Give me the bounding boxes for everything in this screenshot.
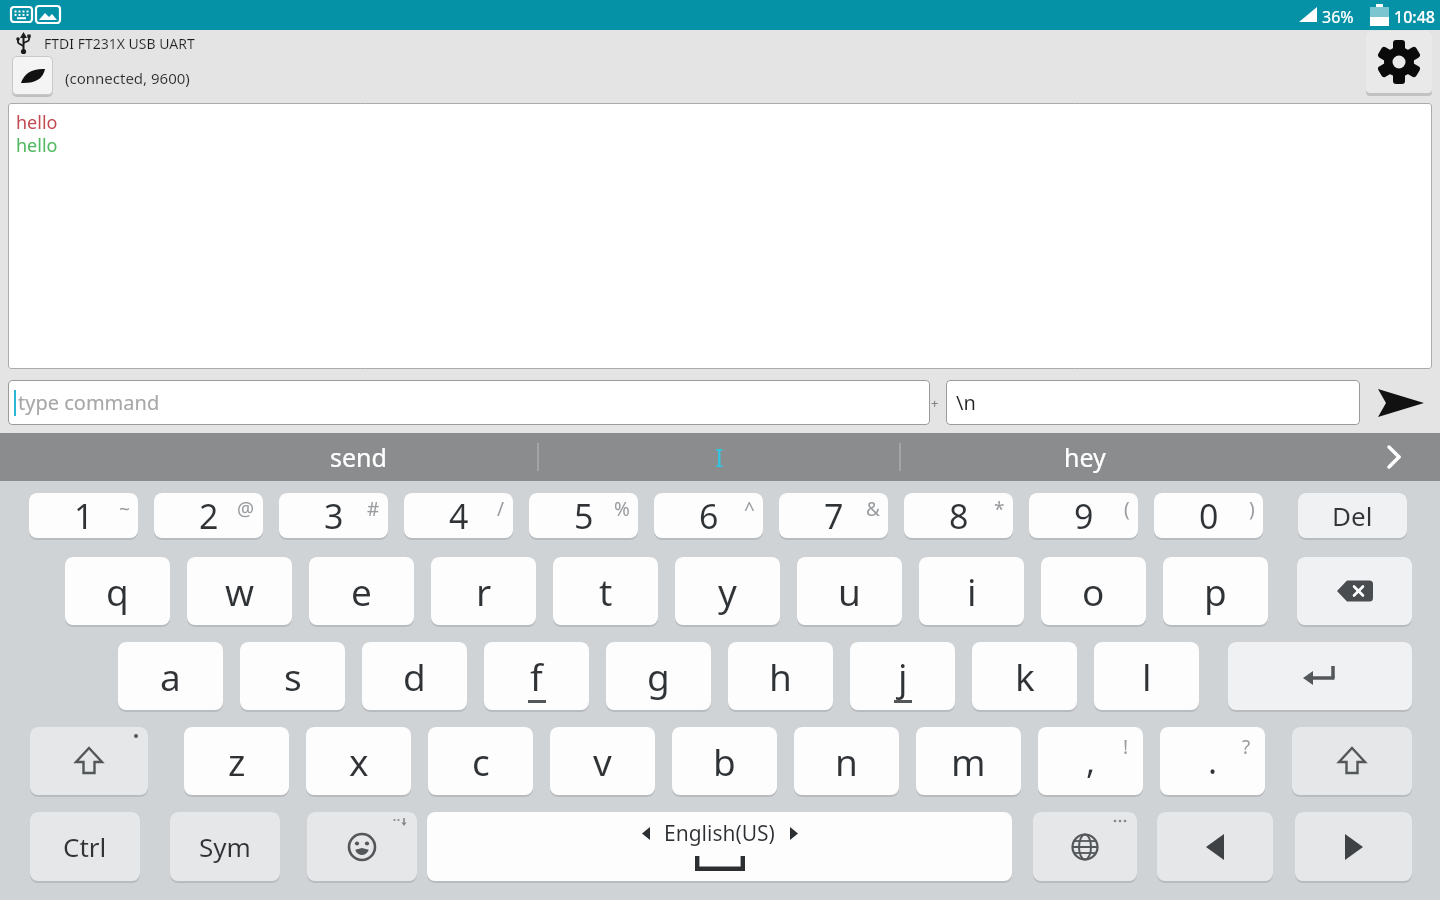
button[interactable] (1354, 433, 1434, 481)
button[interactable]: Del (1298, 493, 1407, 540)
button[interactable]: d (362, 642, 467, 712)
button[interactable]: 1 (29, 493, 138, 540)
staticText: ( (1124, 496, 1130, 522)
button[interactable]: e (309, 557, 414, 627)
button[interactable]: 7 (779, 493, 888, 540)
button[interactable]: 4 (404, 493, 513, 540)
button[interactable]: 2 (154, 493, 263, 540)
staticText: hey (1064, 440, 1106, 474)
staticText: g (647, 651, 670, 701)
staticText: \n (956, 389, 976, 416)
staticText: 7 (824, 493, 844, 538)
button[interactable]: w (187, 557, 292, 627)
button[interactable]: z (184, 727, 289, 797)
button[interactable] (1295, 812, 1412, 883)
staticText: I (715, 440, 724, 474)
button[interactable] (1368, 380, 1434, 425)
staticText: Ctrl (63, 829, 107, 864)
button[interactable]: t (553, 557, 658, 627)
button[interactable]: type command (8, 380, 930, 425)
staticText: % (614, 496, 630, 522)
staticText: 4 (449, 493, 469, 538)
button[interactable]: y (675, 557, 780, 627)
button[interactable]: r (431, 557, 536, 627)
button[interactable]: English(US) (427, 812, 1012, 883)
staticText: , (1086, 738, 1096, 784)
button[interactable]: o (1041, 557, 1146, 627)
staticText: a (160, 651, 181, 701)
staticText: t (599, 566, 613, 616)
button[interactable]: q (65, 557, 170, 627)
staticText: i (967, 566, 977, 616)
button[interactable] (30, 727, 148, 797)
staticText: v (593, 736, 612, 786)
button[interactable]: 0 (1154, 493, 1263, 540)
staticText: d (403, 651, 426, 701)
button[interactable]: n (794, 727, 899, 797)
button[interactable]: x (306, 727, 411, 797)
button[interactable]: c (428, 727, 533, 797)
staticText: hello (16, 133, 58, 158)
staticText: 2 (199, 493, 219, 538)
button[interactable] (1033, 812, 1137, 883)
button[interactable]: s (240, 642, 345, 712)
staticText: 8 (949, 493, 969, 538)
button[interactable] (1157, 812, 1273, 883)
button[interactable]: \n (946, 380, 1360, 425)
staticText: ~ (119, 496, 130, 522)
button[interactable]: hey (900, 433, 1270, 481)
staticText: / (497, 496, 505, 522)
button[interactable]: h (728, 642, 833, 712)
button[interactable]: g (606, 642, 711, 712)
button[interactable]: p (1163, 557, 1268, 627)
button[interactable]: k (972, 642, 1077, 712)
button[interactable]: j (850, 642, 955, 712)
staticText: + (931, 394, 939, 412)
button[interactable]: a (118, 642, 223, 712)
staticText: ^ (744, 496, 755, 522)
button[interactable]: 9 (1029, 493, 1138, 540)
button[interactable]: 5 (529, 493, 638, 540)
button[interactable]: 8 (904, 493, 1013, 540)
staticText: 36% (1322, 6, 1354, 28)
staticText: l (1142, 651, 1152, 701)
staticText: & (866, 496, 880, 522)
staticText: (connected, 9600) (65, 68, 190, 88)
button[interactable]: I (538, 433, 900, 481)
button[interactable]: send (178, 433, 538, 481)
staticText: ? (1242, 734, 1251, 760)
button[interactable]: b (672, 727, 777, 797)
button[interactable] (1366, 31, 1432, 96)
staticText: q (106, 566, 129, 616)
button[interactable]: v (550, 727, 655, 797)
button[interactable]: . (1160, 727, 1265, 797)
button[interactable] (307, 812, 417, 883)
staticText: * (994, 496, 1005, 522)
staticText: e (351, 566, 372, 616)
button[interactable]: l (1094, 642, 1199, 712)
button[interactable]: i (919, 557, 1024, 627)
staticText: type command (18, 389, 160, 416)
button[interactable]: Sym (170, 812, 280, 883)
button[interactable] (12, 56, 53, 97)
staticText: ) (1249, 496, 1255, 522)
staticText: 6 (699, 493, 719, 538)
staticText: FTDI FT231X USB UART (44, 34, 195, 53)
staticText: hello (16, 110, 58, 135)
staticText: b (713, 736, 736, 786)
button[interactable]: u (797, 557, 902, 627)
button[interactable] (1228, 642, 1412, 712)
button[interactable]: 6 (654, 493, 763, 540)
staticText: z (228, 736, 246, 786)
button[interactable]: Ctrl (30, 812, 140, 883)
staticText: x (349, 736, 369, 786)
staticText: 1 (74, 493, 94, 538)
button[interactable] (1292, 727, 1412, 797)
button[interactable]: m (916, 727, 1021, 797)
staticText: Del (1332, 498, 1373, 533)
staticText: h (769, 651, 792, 701)
button[interactable]: , (1038, 727, 1143, 797)
button[interactable] (1297, 557, 1412, 627)
button[interactable]: f (484, 642, 589, 712)
button[interactable]: 3 (279, 493, 388, 540)
